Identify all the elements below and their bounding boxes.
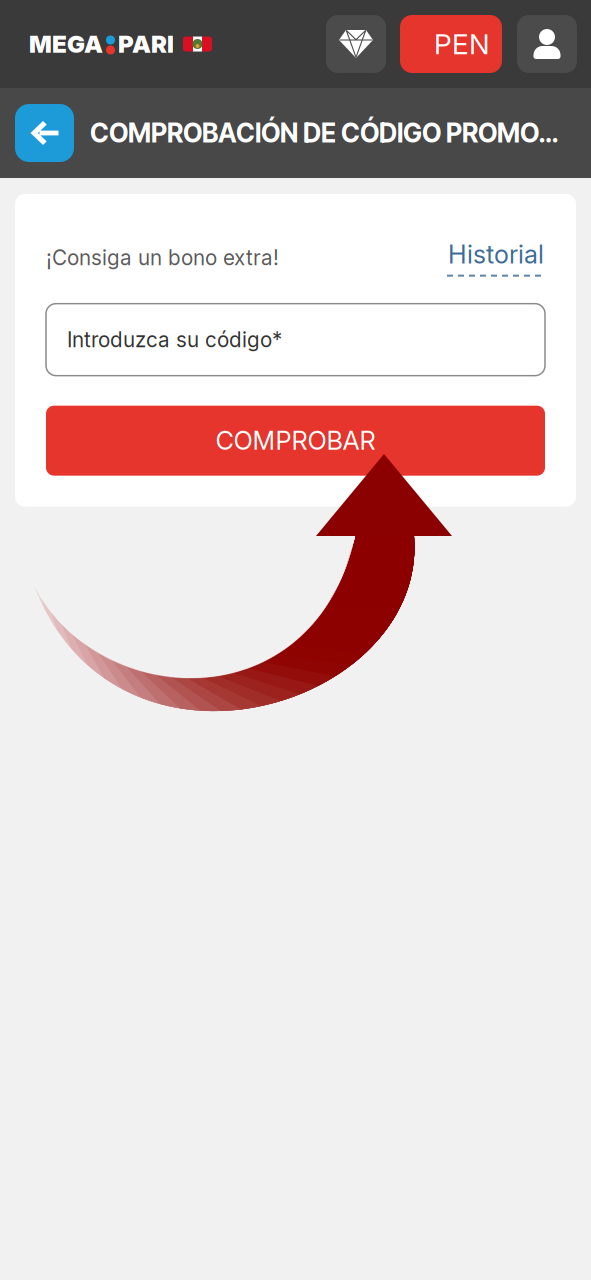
button[interactable]: Bonuses <box>326 15 386 73</box>
staticText: Historial <box>448 239 544 270</box>
button[interactable]: PEN <box>400 15 502 73</box>
staticText: COMPROBAR <box>215 425 375 456</box>
button[interactable]: Back <box>15 104 74 162</box>
staticText: COMPROBACIÓN DE CÓDIGO PROMO… <box>90 117 558 149</box>
staticText: PEN <box>434 27 490 61</box>
staticText: ¡Consiga un bono extra! <box>46 245 279 270</box>
staticText: PARI <box>118 29 174 58</box>
button[interactable]: Account <box>517 15 577 73</box>
button[interactable]: COMPROBAR <box>46 406 545 476</box>
staticText: MEGA <box>29 29 103 58</box>
staticText: Introduzca su código* <box>67 327 282 352</box>
button[interactable]: Historial <box>447 239 545 277</box>
